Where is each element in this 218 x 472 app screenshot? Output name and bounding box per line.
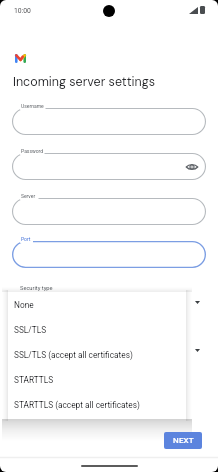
staticText: STARTTLS <box>14 375 54 385</box>
staticText: Security type <box>20 285 53 292</box>
button[interactable]: NEXT <box>164 432 202 449</box>
staticText: None <box>14 300 34 310</box>
staticText: NEXT <box>173 436 194 445</box>
staticText: Port <box>21 236 31 242</box>
staticText: Server <box>21 193 36 199</box>
button[interactable]: Show password <box>185 160 199 174</box>
staticText: Username <box>21 103 44 109</box>
staticText: SSL/TLS (accept all certificates) <box>14 350 133 360</box>
button[interactable]: STARTTLS (accept all certificates) <box>8 392 186 417</box>
button[interactable]: SSL/TLS (accept all certificates) <box>8 342 186 367</box>
button[interactable]: Password <box>12 153 206 180</box>
staticText: Password <box>21 148 44 154</box>
button[interactable]: None <box>8 292 186 317</box>
button[interactable]: SSL/TLS <box>8 317 186 342</box>
button[interactable]: Username <box>12 108 206 135</box>
button[interactable]: STARTTLS <box>8 367 186 392</box>
staticText: STARTTLS (accept all certificates) <box>14 400 140 410</box>
staticText: 10:00 <box>14 7 31 15</box>
staticText: Incoming server settings <box>13 74 155 90</box>
staticText: SSL/TLS <box>14 325 47 335</box>
button[interactable]: Server <box>12 198 206 225</box>
button[interactable]: Port <box>12 241 206 268</box>
